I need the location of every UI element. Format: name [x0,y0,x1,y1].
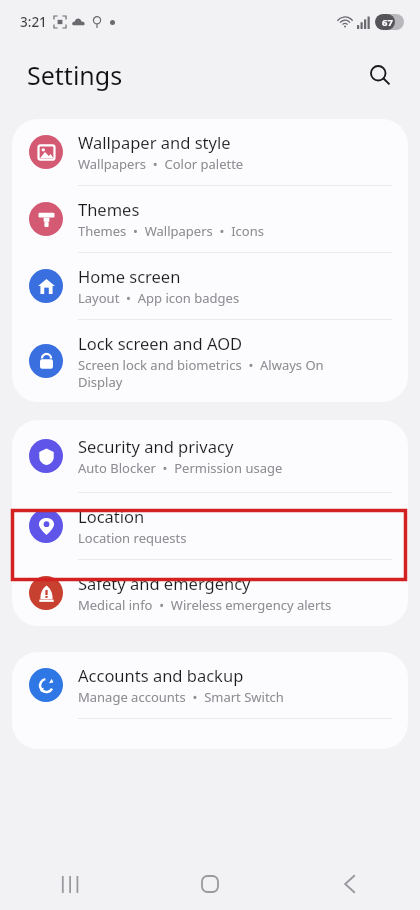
staticText: 3:21 [20,13,47,31]
staticText: Layout • App icon badges [78,289,240,307]
staticText: Settings [27,58,123,92]
staticText: 67 [382,16,393,29]
button[interactable]: Home [140,858,280,910]
button[interactable]: Wallpaper and style [12,119,408,185]
staticText: Auto Blocker • Permission usage [78,459,283,477]
button[interactable]: Lock screen and AOD [12,320,408,402]
button[interactable]: Location [12,493,408,559]
staticText: Wallpapers • Color palette [78,155,244,173]
button[interactable]: Themes [12,186,408,252]
button[interactable]: Accounts and backup [12,652,408,718]
button[interactable]: Search [358,53,402,97]
staticText: Screen lock and biometrics • Always On D… [78,356,324,391]
staticText: Themes • Wallpapers • Icons [78,222,264,240]
staticText: Location requests [78,529,187,547]
staticText: Home screen [78,265,181,287]
button[interactable]: Back [280,858,420,910]
staticText: Lock screen and AOD [78,332,243,354]
staticText: Accounts and backup [78,664,244,686]
staticText: Medical info • Wireless emergency alerts [78,596,332,614]
staticText: Location [78,505,145,527]
button[interactable]: Security and privacy [12,420,408,492]
staticText: Safety and emergency [78,572,251,594]
staticText: Themes [78,198,140,220]
staticText: Wallpaper and style [78,131,231,153]
staticText: Security and privacy [78,435,234,457]
staticText: Manage accounts • Smart Switch [78,688,284,706]
button[interactable]: Safety and emergency [12,560,408,626]
button[interactable]: Home screen [12,253,408,319]
button[interactable]: Recent apps [0,858,140,910]
